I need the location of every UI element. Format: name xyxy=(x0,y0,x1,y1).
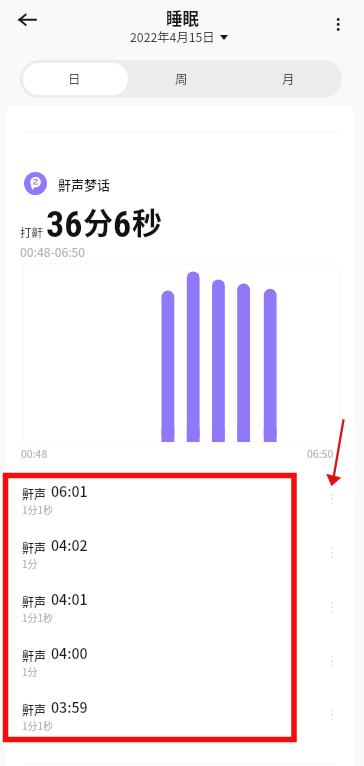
button[interactable]: More options xyxy=(320,6,356,42)
staticText: 06:50 xyxy=(307,446,334,461)
staticText: 1分1秒 xyxy=(22,610,54,624)
staticText: 1分1秒 xyxy=(22,502,54,516)
staticText: 鼾声 xyxy=(22,647,47,664)
staticText: 04:00 xyxy=(51,643,88,664)
button[interactable]: Item menu xyxy=(326,580,364,634)
staticText: 00:48-06:50 xyxy=(20,243,86,261)
staticText: 鼾声 xyxy=(22,701,47,718)
staticText: 日 xyxy=(68,69,81,87)
staticText: 03:59 xyxy=(51,697,88,718)
staticText: 04:01 xyxy=(51,589,88,610)
button[interactable]: 鼾声 xyxy=(0,526,364,580)
staticText: 鼾声 xyxy=(22,593,47,610)
staticText: 鼾声梦话 xyxy=(58,175,111,194)
staticText: 睡眠 xyxy=(166,6,199,30)
staticText: 04:02 xyxy=(51,535,88,556)
button[interactable]: 周 xyxy=(128,60,235,98)
staticText: 鼾声 xyxy=(22,485,47,502)
staticText: 秒 xyxy=(132,199,162,242)
staticText: 分 xyxy=(83,199,113,242)
staticText: 00:48 xyxy=(21,446,48,461)
button[interactable]: 鼾声 xyxy=(0,472,364,526)
button[interactable]: 鼾声 xyxy=(0,634,364,688)
staticText: 鼾声 xyxy=(22,539,47,556)
staticText: 06:01 xyxy=(51,481,88,502)
button[interactable]: 日 xyxy=(20,60,128,98)
button[interactable]: 鼾声 xyxy=(0,580,364,634)
button[interactable]: Back xyxy=(8,0,48,40)
button[interactable]: Item menu xyxy=(326,634,364,688)
staticText: 2022年4月15日 xyxy=(130,28,215,46)
button[interactable]: Item menu xyxy=(326,688,364,742)
staticText: 6 xyxy=(113,204,132,246)
staticText: 1分 xyxy=(22,664,38,678)
staticText: 月 xyxy=(282,69,295,87)
staticText: 打鼾 xyxy=(20,224,43,241)
button[interactable]: Item menu xyxy=(326,472,364,526)
staticText: 周 xyxy=(175,69,188,87)
button[interactable]: 月 xyxy=(235,60,342,98)
staticText: 1分 xyxy=(22,556,38,570)
button[interactable]: Item menu xyxy=(326,526,364,580)
button[interactable]: 鼾声 xyxy=(0,688,364,742)
staticText: 36 xyxy=(46,204,83,246)
staticText: 1分1秒 xyxy=(22,718,54,732)
